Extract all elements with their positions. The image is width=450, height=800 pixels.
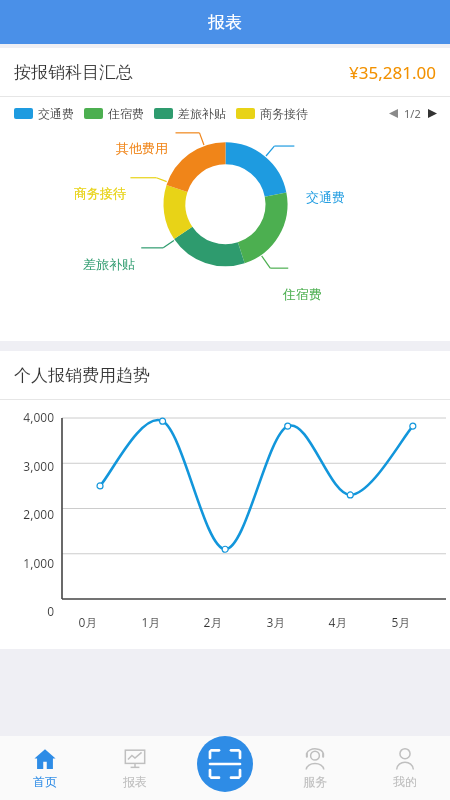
staticText: 2,000 (2, 506, 54, 522)
staticText: 3月 (256, 614, 296, 630)
staticText: 1/2 (404, 106, 421, 121)
staticText: 1,000 (2, 555, 54, 571)
button[interactable]: 个人报销费用趋势 (0, 351, 450, 399)
staticText: 差旅补贴 (178, 106, 226, 121)
staticText: 2月 (193, 614, 233, 630)
staticText: 住宿费 (108, 106, 144, 121)
staticText: 我的 (393, 774, 417, 789)
staticText: 服务 (303, 774, 327, 789)
staticText: 1月 (131, 614, 171, 630)
staticText: 商务接待 (260, 106, 308, 121)
button[interactable]: 扫一扫 (197, 736, 253, 792)
button[interactable]: 报表 (90, 736, 180, 800)
staticText: 报表 (208, 12, 242, 33)
staticText: 个人报销费用趋势 (14, 365, 150, 386)
staticText: 首页 (33, 774, 57, 789)
staticText: 4月 (318, 614, 358, 630)
staticText: 住宿费 (283, 286, 322, 302)
staticText: 其他费用 (116, 140, 168, 156)
staticText: 报表 (123, 774, 147, 789)
staticText: 0 (2, 603, 54, 619)
staticText: 交通费 (306, 189, 345, 205)
staticText: 3,000 (2, 458, 54, 474)
staticText: 交通费 (38, 106, 74, 121)
staticText: 按报销科目汇总 (14, 62, 133, 83)
staticText: 4,000 (2, 409, 54, 425)
button[interactable]: 我的 (360, 736, 450, 800)
button[interactable]: 服务 (270, 736, 360, 800)
button[interactable]: 首页 (0, 736, 90, 800)
staticText: 5月 (381, 614, 421, 630)
staticText: 差旅补贴 (83, 256, 135, 272)
button[interactable]: 上一页 (385, 105, 401, 121)
staticText: 商务接待 (74, 185, 126, 201)
button[interactable]: 按报销科目汇总 (0, 48, 450, 96)
staticText: ¥35,281.00 (349, 61, 436, 84)
button[interactable]: 下一页 (424, 105, 440, 121)
staticText: 0月 (68, 614, 108, 630)
